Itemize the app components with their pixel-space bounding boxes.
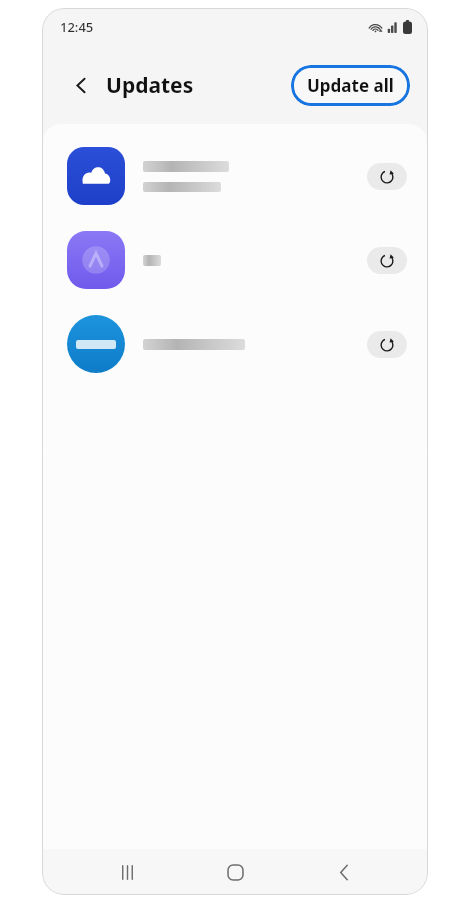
staticText: 12:45 xyxy=(60,18,94,36)
button[interactable]: Update xyxy=(367,331,407,358)
staticText: Updates xyxy=(106,71,194,100)
button[interactable]: Update xyxy=(43,302,427,386)
button[interactable]: Home xyxy=(211,849,259,895)
button[interactable]: Update xyxy=(43,218,427,302)
button[interactable]: Update xyxy=(367,163,407,190)
button[interactable]: Update xyxy=(367,247,407,274)
button[interactable]: Update all xyxy=(291,65,410,106)
button[interactable]: Back xyxy=(64,68,98,102)
button[interactable]: Update xyxy=(43,134,427,218)
button[interactable]: Recents xyxy=(103,849,151,895)
staticText: Update all xyxy=(307,74,394,97)
button[interactable]: Back xyxy=(320,849,368,895)
